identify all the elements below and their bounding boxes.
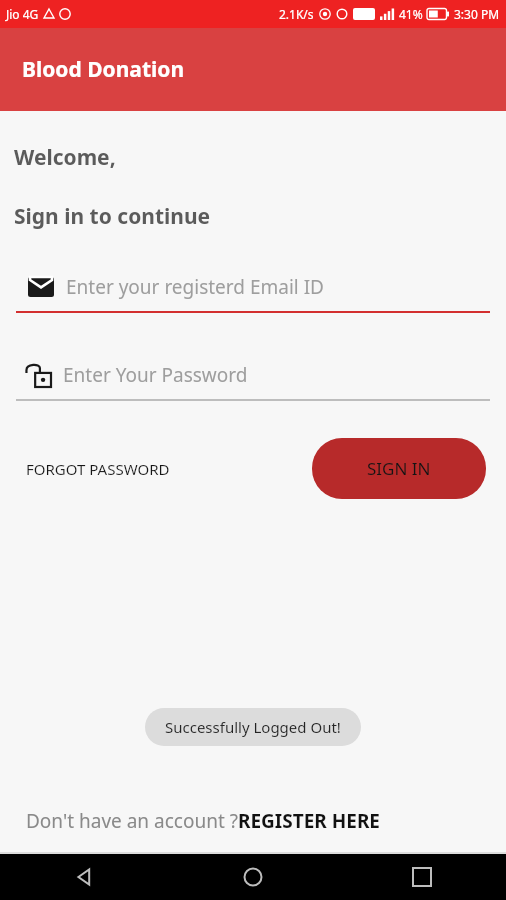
staticText: Don't have an account ? [26,808,238,834]
button[interactable]: Recents [337,854,506,900]
staticText: Enter Your Password [63,362,248,388]
staticText: Jio 4G [6,6,39,22]
staticText: SIGN IN [367,457,431,480]
staticText: Blood Donation [22,55,185,84]
staticText: Welcome, [14,143,116,172]
staticText: FORGOT PASSWORD [26,459,170,479]
button[interactable]: Don't have an account ? [0,808,506,834]
button[interactable]: Back [0,854,168,900]
staticText: Successfully Logged Out! [165,717,341,737]
button[interactable]: Enter your registerd Email ID [16,269,490,313]
staticText: Enter your registerd Email ID [66,274,324,300]
staticText: REGISTER HERE [238,808,381,834]
staticText: 3:30 PM [454,6,500,22]
staticText: 41% [399,6,423,22]
staticText: 2.1K/s [279,6,314,22]
button[interactable]: SIGN IN [312,438,486,499]
button[interactable]: FORGOT PASSWORD [20,449,176,489]
staticText: Sign in to continue [14,202,211,231]
button[interactable]: Enter Your Password [16,357,490,401]
button[interactable]: Home [168,854,337,900]
